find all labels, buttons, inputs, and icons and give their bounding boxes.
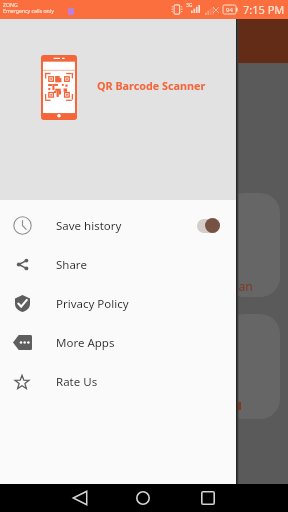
- staticText: Rate Us: [56, 374, 98, 390]
- button[interactable]: Privacy Policy: [0, 284, 236, 323]
- staticText: Share: [56, 257, 87, 273]
- button[interactable]: Recents: [194, 484, 222, 512]
- button[interactable]: Back: [66, 484, 94, 512]
- staticText: QR Barcode Scanner: [97, 78, 206, 93]
- staticText: More Apps: [56, 335, 115, 351]
- button[interactable]: Share: [0, 245, 236, 284]
- staticText: Scan: [226, 278, 253, 294]
- button[interactable]: Rate Us: [0, 362, 236, 401]
- button[interactable]: Home: [129, 484, 157, 512]
- staticText: Save history: [56, 218, 122, 234]
- button[interactable]: Save history: [0, 206, 236, 245]
- staticText: 3G: [186, 2, 193, 9]
- staticText: 94: [226, 6, 233, 14]
- staticText: ZONG: [3, 1, 18, 8]
- staticText: 7:15 PM: [243, 2, 285, 17]
- staticText: Emergency calls only: [3, 7, 54, 14]
- button[interactable]: More Apps: [0, 323, 236, 362]
- staticText: Privacy Policy: [56, 296, 129, 312]
